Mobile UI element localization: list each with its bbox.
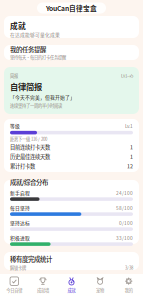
- staticText: 1: [130, 143, 133, 151]
- staticText: 坚持达标: [10, 219, 30, 226]
- staticText: 稀有度完成统计: [10, 254, 52, 264]
- staticText: 今日自律: [6, 287, 22, 293]
- staticText: 成就/综合分布: [10, 177, 48, 187]
- staticText: 目前连续打卡天数: [10, 143, 50, 151]
- staticText: 24/100: [116, 189, 133, 196]
- staticText: 「今天不完美，但我开始了」: [10, 94, 75, 101]
- staticText: 坚持每天·每日的打卡任务提醒: [10, 54, 66, 60]
- staticText: 12: [127, 162, 133, 170]
- staticText: Lv1→5: [121, 73, 133, 79]
- staticText: 成就: [67, 287, 75, 293]
- staticText: 在达成能够可量化成果: [10, 31, 60, 38]
- button[interactable]: 我的: [114, 274, 143, 296]
- staticText: Lv.1: [125, 122, 133, 129]
- staticText: 自律简报: [10, 80, 42, 92]
- staticText: 距离下一级 116 / 200: [10, 136, 47, 142]
- staticText: 每日坚持: [10, 204, 30, 211]
- staticText: 我的任务提醒: [10, 45, 46, 54]
- button[interactable]: 成就墙: [29, 274, 57, 296]
- staticText: 连续坚持了一周的半小时阅读: [10, 102, 62, 108]
- button[interactable]: 宠物: [86, 274, 114, 296]
- staticText: 0/100: [119, 219, 133, 226]
- staticText: 宠物: [96, 287, 104, 293]
- staticText: 简报: [10, 73, 18, 79]
- staticText: 成就: [10, 20, 26, 31]
- staticText: 等级: [10, 122, 20, 129]
- staticText: 历史最佳连续天数: [10, 152, 50, 160]
- staticText: 1: [130, 152, 133, 160]
- staticText: 新手启程: [10, 189, 30, 196]
- staticText: 我的: [125, 287, 133, 293]
- staticText: 累计打卡数: [10, 162, 35, 170]
- staticText: 3/38: [125, 264, 133, 271]
- button[interactable]: 今日自律: [0, 274, 29, 296]
- staticText: 成就墙: [37, 287, 49, 293]
- staticText: 积极进取: [10, 234, 30, 241]
- staticText: 58/100: [116, 204, 133, 211]
- staticText: 解锁卡牌: [10, 264, 26, 271]
- staticText: 33/100: [116, 234, 133, 241]
- staticText: YouCan自律宝盒: [46, 3, 97, 13]
- button[interactable]: 成就: [57, 274, 86, 296]
